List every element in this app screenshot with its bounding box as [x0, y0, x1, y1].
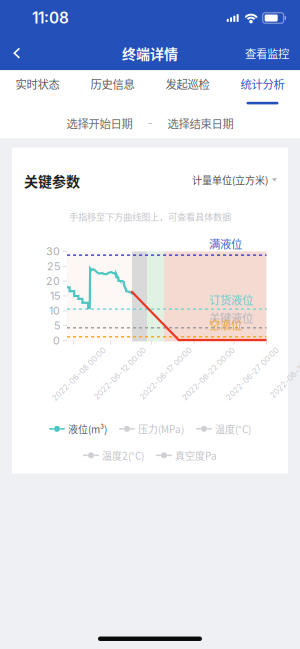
staticText: -: [147, 117, 152, 130]
button[interactable]: 温度(°C): [196, 420, 251, 438]
button[interactable]: 压力(MPa): [119, 420, 184, 438]
staticText: 手指移至下方曲线图上，可查看具体数据: [69, 210, 231, 223]
staticText: 30: [46, 245, 60, 258]
staticText: 5: [54, 319, 60, 332]
staticText: 液位(m³): [68, 422, 107, 436]
staticText: 历史信息: [90, 76, 134, 92]
staticText: 11:08: [32, 9, 69, 27]
staticText: 统计分析: [240, 76, 284, 92]
staticText: 实时状态: [15, 76, 59, 92]
button[interactable]: 液位(m³): [49, 420, 107, 438]
button[interactable]: 关键参数: [12, 166, 92, 196]
staticText: 选择开始日期: [66, 115, 132, 131]
staticText: 10: [49, 304, 60, 317]
button[interactable]: 选择结束日期: [163, 108, 237, 138]
button[interactable]: 统计分析: [225, 70, 300, 108]
staticText: 终端详情: [122, 43, 178, 63]
button[interactable]: 实时状态: [0, 70, 75, 108]
staticText: 2022-06-30 11:00: [262, 371, 300, 380]
button[interactable]: 选择开始日期: [62, 108, 136, 138]
button[interactable]: 温度2(°C): [83, 446, 144, 465]
staticText: 查看监控: [245, 45, 289, 61]
staticText: 25: [47, 260, 60, 273]
staticText: 空液位: [209, 316, 242, 333]
staticText: 关键液位: [209, 309, 253, 326]
staticText: 满液位: [209, 235, 242, 252]
staticText: 2022-06-22 00:00: [174, 371, 245, 380]
button[interactable]: 历史信息: [75, 70, 150, 108]
staticText: 关键参数: [24, 171, 80, 191]
staticText: 2022-06-27 00:00: [217, 371, 288, 380]
staticText: 15: [50, 289, 60, 302]
staticText: 真空度Pa: [175, 448, 217, 463]
staticText: 0: [53, 334, 60, 347]
staticText: 2022-06-17 00:00: [131, 371, 201, 380]
button[interactable]: 发起巡检: [150, 70, 225, 108]
button[interactable]: 查看监控: [235, 36, 300, 70]
staticText: 2022-06-08 00:00: [43, 371, 115, 380]
staticText: 订货液位: [209, 291, 253, 308]
staticText: 计量单位(立方米): [192, 173, 268, 187]
staticText: 选择结束日期: [167, 115, 233, 131]
button[interactable]: 计量单位(立方米): [188, 168, 281, 192]
staticText: 20: [46, 275, 60, 287]
staticText: 2022-06-12 00:00: [86, 371, 156, 380]
button[interactable]: 真空度Pa: [156, 446, 217, 465]
staticText: 温度2(°C): [102, 448, 144, 463]
staticText: 压力(MPa): [138, 422, 184, 436]
staticText: 温度(°C): [215, 422, 251, 436]
button[interactable]: 返回: [0, 38, 33, 68]
staticText: 发起巡检: [165, 76, 209, 92]
